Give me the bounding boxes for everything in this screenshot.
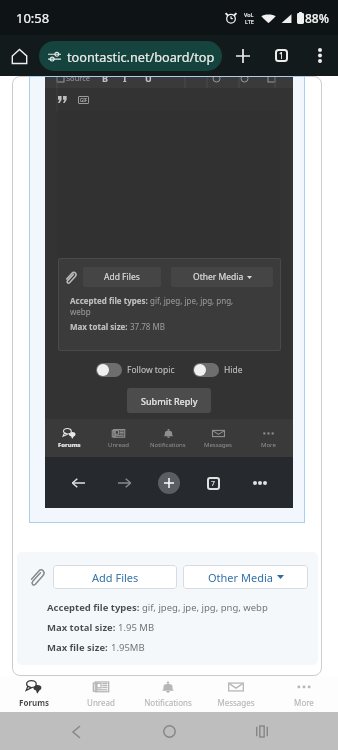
staticText: Max total size: bbox=[70, 321, 130, 332]
button[interactable]: New tab bbox=[229, 42, 256, 69]
staticText: Follow topic bbox=[127, 364, 175, 376]
staticText: Source bbox=[66, 76, 91, 83]
staticText: Add Files bbox=[104, 271, 140, 283]
staticText: Hide bbox=[224, 364, 243, 376]
staticText: Accepted file types: bbox=[47, 601, 142, 614]
staticText: gif, jpeg, jpe, jpg, png, webp bbox=[142, 601, 268, 614]
button[interactable]: Add Files bbox=[53, 565, 177, 589]
staticText: Forums bbox=[19, 697, 49, 708]
staticText: Add Files bbox=[92, 570, 139, 585]
staticText: 1.95 MB bbox=[118, 621, 155, 634]
button[interactable]: Add Files bbox=[83, 267, 161, 287]
button[interactable]: Messages bbox=[193, 419, 243, 457]
button[interactable]: Other Media bbox=[171, 267, 273, 287]
staticText: 7 bbox=[211, 479, 216, 489]
staticText: More bbox=[294, 697, 314, 708]
staticText: Forums bbox=[58, 441, 81, 449]
staticText: Notifications bbox=[150, 441, 186, 449]
staticText: Other Media bbox=[193, 271, 244, 283]
button[interactable]: Forums bbox=[45, 419, 94, 457]
button[interactable]: Unread bbox=[67, 676, 134, 712]
button[interactable]: Recent apps bbox=[245, 715, 278, 748]
staticText: toontastic.net/board/top bbox=[67, 48, 215, 65]
staticText: VoL bbox=[244, 11, 254, 18]
staticText: I bbox=[123, 76, 127, 84]
staticText: U bbox=[145, 76, 152, 84]
button[interactable]: toontastic.net/board/top bbox=[39, 41, 222, 71]
staticText: Submit Reply bbox=[141, 395, 198, 407]
button[interactable]: Unread bbox=[94, 419, 143, 457]
staticText: 88% bbox=[305, 10, 329, 26]
staticText: webp bbox=[70, 306, 91, 317]
staticText: 1 bbox=[279, 50, 284, 61]
staticText: Other Media bbox=[208, 570, 273, 585]
staticText: 10:58 bbox=[16, 9, 50, 27]
staticText: gif, jpeg, jpe, jpg, png, bbox=[150, 295, 234, 306]
staticText: Max total size: bbox=[47, 621, 118, 634]
staticText: Messages bbox=[204, 441, 232, 449]
staticText: 1.95MB bbox=[111, 641, 145, 654]
button[interactable]: Submit Reply bbox=[127, 388, 211, 413]
button[interactable]: Messages bbox=[202, 676, 270, 712]
button[interactable]: Notifications bbox=[143, 419, 193, 457]
button[interactable]: Back bbox=[65, 470, 91, 496]
button[interactable]: More bbox=[243, 419, 293, 457]
staticText: Accepted file types: bbox=[70, 295, 150, 306]
button[interactable]: Hide bbox=[193, 363, 219, 377]
button[interactable]: Forward bbox=[112, 470, 138, 496]
button[interactable]: More options bbox=[306, 42, 333, 69]
staticText: LTE bbox=[245, 18, 254, 25]
staticText: GIF bbox=[80, 97, 88, 103]
button[interactable]: More options bbox=[247, 470, 273, 496]
button[interactable]: Forums bbox=[0, 676, 67, 712]
staticText: Messages bbox=[217, 697, 255, 708]
button[interactable]: Follow topic bbox=[96, 363, 122, 377]
button[interactable]: Tabs bbox=[200, 470, 226, 496]
staticText: B bbox=[102, 76, 108, 84]
staticText: 37.78 MB bbox=[130, 321, 165, 332]
staticText: Notifications bbox=[144, 697, 192, 708]
button[interactable]: New tab bbox=[158, 472, 180, 494]
button[interactable]: Tabs bbox=[268, 42, 295, 69]
staticText: Unread bbox=[108, 441, 129, 449]
button[interactable]: Home bbox=[6, 43, 32, 69]
button[interactable]: Home bbox=[153, 715, 186, 748]
staticText: More bbox=[261, 441, 276, 449]
button[interactable]: Other Media bbox=[183, 565, 308, 589]
button[interactable]: Back bbox=[60, 715, 93, 748]
staticText: Unread bbox=[87, 697, 115, 708]
button[interactable]: Notifications bbox=[134, 676, 202, 712]
staticText: Max file size: bbox=[47, 641, 111, 654]
button[interactable]: More bbox=[270, 676, 338, 712]
